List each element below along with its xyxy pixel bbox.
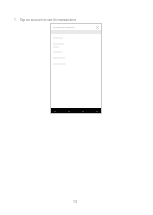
button[interactable]: Recents: [80, 108, 86, 114]
button[interactable]: Home: [66, 108, 72, 114]
staticText: 1.: [14, 18, 17, 22]
staticText: Choose an account: [53, 25, 75, 28]
button[interactable]: Close: [95, 25, 99, 29]
button[interactable]: Back: [52, 108, 58, 114]
staticText: 13: [73, 199, 77, 204]
button[interactable]: Menu: [94, 108, 100, 114]
button[interactable]: Choose an account: [50, 23, 102, 30]
staticText: Tap an account to see its transactions: [20, 18, 76, 22]
